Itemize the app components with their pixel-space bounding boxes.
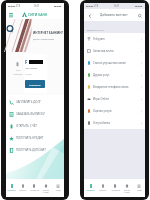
button[interactable]: ИСТОРИЯ (28, 179, 40, 197)
button[interactable]: Мой Кошелёк (12, 62, 23, 75)
staticText: Мой Кошелёк (13, 69, 23, 75)
staticText: Услуги банка (93, 121, 110, 125)
staticText: ЕЩЁ (137, 189, 142, 192)
staticText: Оплатить (29, 83, 41, 86)
staticText: ▬▬▬ (135, 5, 143, 8)
staticText: ОПЛАТА (19, 189, 27, 192)
button[interactable]: ОПЛАТА (97, 179, 109, 197)
button[interactable]: Записная книга (87, 45, 143, 57)
staticText: Добавить контакт (100, 13, 128, 17)
staticText: Внедрение телефона связь (93, 85, 129, 89)
button[interactable]: Search (136, 12, 143, 19)
button[interactable]: Друзья услуг (87, 69, 143, 81)
staticText: Telegram (93, 37, 105, 41)
staticText: КАРТЫ СЧЕТА (121, 189, 133, 193)
staticText: ▬▬▬ LTE (8, 4, 21, 8)
button[interactable]: ПОЛУЧИТЬ ДЕПОЗИТ (9, 144, 64, 156)
button[interactable]: Игры Online (87, 93, 143, 105)
staticText: ▬▬▬ (54, 5, 62, 8)
staticText: ЗАПЛАТИТЬ ДОЛГ (16, 100, 41, 104)
staticText: ГЛАВНАЯ (7, 189, 16, 192)
staticText: ▬▬▬ LTE (86, 4, 99, 8)
staticText: ОТКРЫТЬ СЧЁТ (16, 124, 37, 128)
button[interactable]: ЗАКАЗАТЬ ВЫПИСКУ (9, 108, 64, 120)
staticText: ИСТОРИЯ (30, 189, 39, 192)
button[interactable]: КАРТЫ СЧЕТА (121, 179, 133, 197)
button[interactable]: Telegram (87, 33, 143, 45)
staticText: Доступ к счетам онлайн (33, 38, 55, 40)
staticText: СИТИ БАНК (28, 12, 48, 17)
button[interactable]: ОПЛАТА (17, 179, 28, 197)
staticText: ЕЩЁ (56, 189, 61, 192)
staticText: ДОБАВИТЬ ИЗ (87, 28, 104, 31)
staticText: КАРТЫ СЧЕТА (40, 189, 52, 193)
button[interactable]: Список улучшения связи (87, 57, 143, 69)
button[interactable]: F (24, 54, 47, 93)
staticText: ПОЛУЧИТЬ ДЕПОЗИТ (16, 148, 46, 152)
button[interactable]: ЕЩЁ (52, 179, 64, 197)
button[interactable]: Menu (7, 11, 14, 18)
staticText: 9:41 (34, 4, 40, 8)
staticText: ИСТОРИЯ (111, 189, 120, 192)
button[interactable]: Оплатить (25, 80, 45, 88)
staticText: ИНТЕРНЕТ БАНКИНГ (33, 31, 64, 35)
button[interactable]: ИСТОРИЯ (109, 179, 121, 197)
staticText: Оценка услуга (93, 109, 112, 113)
staticText: ГЛАВНАЯ (86, 189, 95, 192)
staticText: 9:41 (114, 4, 120, 8)
staticText: Друзья услуг (93, 73, 110, 77)
button[interactable]: Внедрение телефона связь (87, 81, 143, 93)
staticText: Игры Online (93, 97, 109, 101)
staticText: ЗАКАЗАТЬ ВЫПИСКУ (16, 112, 45, 116)
button[interactable]: ЗАПЛАТИТЬ ДОЛГ (9, 96, 64, 108)
button[interactable]: ГЛАВНАЯ (6, 179, 17, 197)
button[interactable]: ЕЩЁ (133, 179, 145, 197)
button[interactable]: ГЛАВНАЯ (84, 179, 97, 197)
staticText: F (25, 59, 28, 65)
button[interactable]: КАРТЫ СЧЕТА (40, 179, 52, 197)
staticText: Сумма (25, 73, 32, 76)
button[interactable]: ОТКРЫТЬ СЧЁТ (9, 120, 64, 132)
button[interactable]: Back (86, 12, 93, 19)
staticText: Записная книга (93, 49, 114, 53)
button[interactable]: Услуги банка (87, 117, 143, 129)
staticText: ОПЛАТА (99, 189, 107, 192)
staticText: Список улучшения связи (93, 61, 126, 65)
staticText: ПОЛУЧИТЬ КРЕДИТ (16, 136, 44, 140)
staticText: Мой номер (25, 67, 38, 70)
button[interactable]: ПОЛУЧИТЬ КРЕДИТ (9, 132, 64, 144)
button[interactable]: Оценка услуга (87, 105, 143, 117)
